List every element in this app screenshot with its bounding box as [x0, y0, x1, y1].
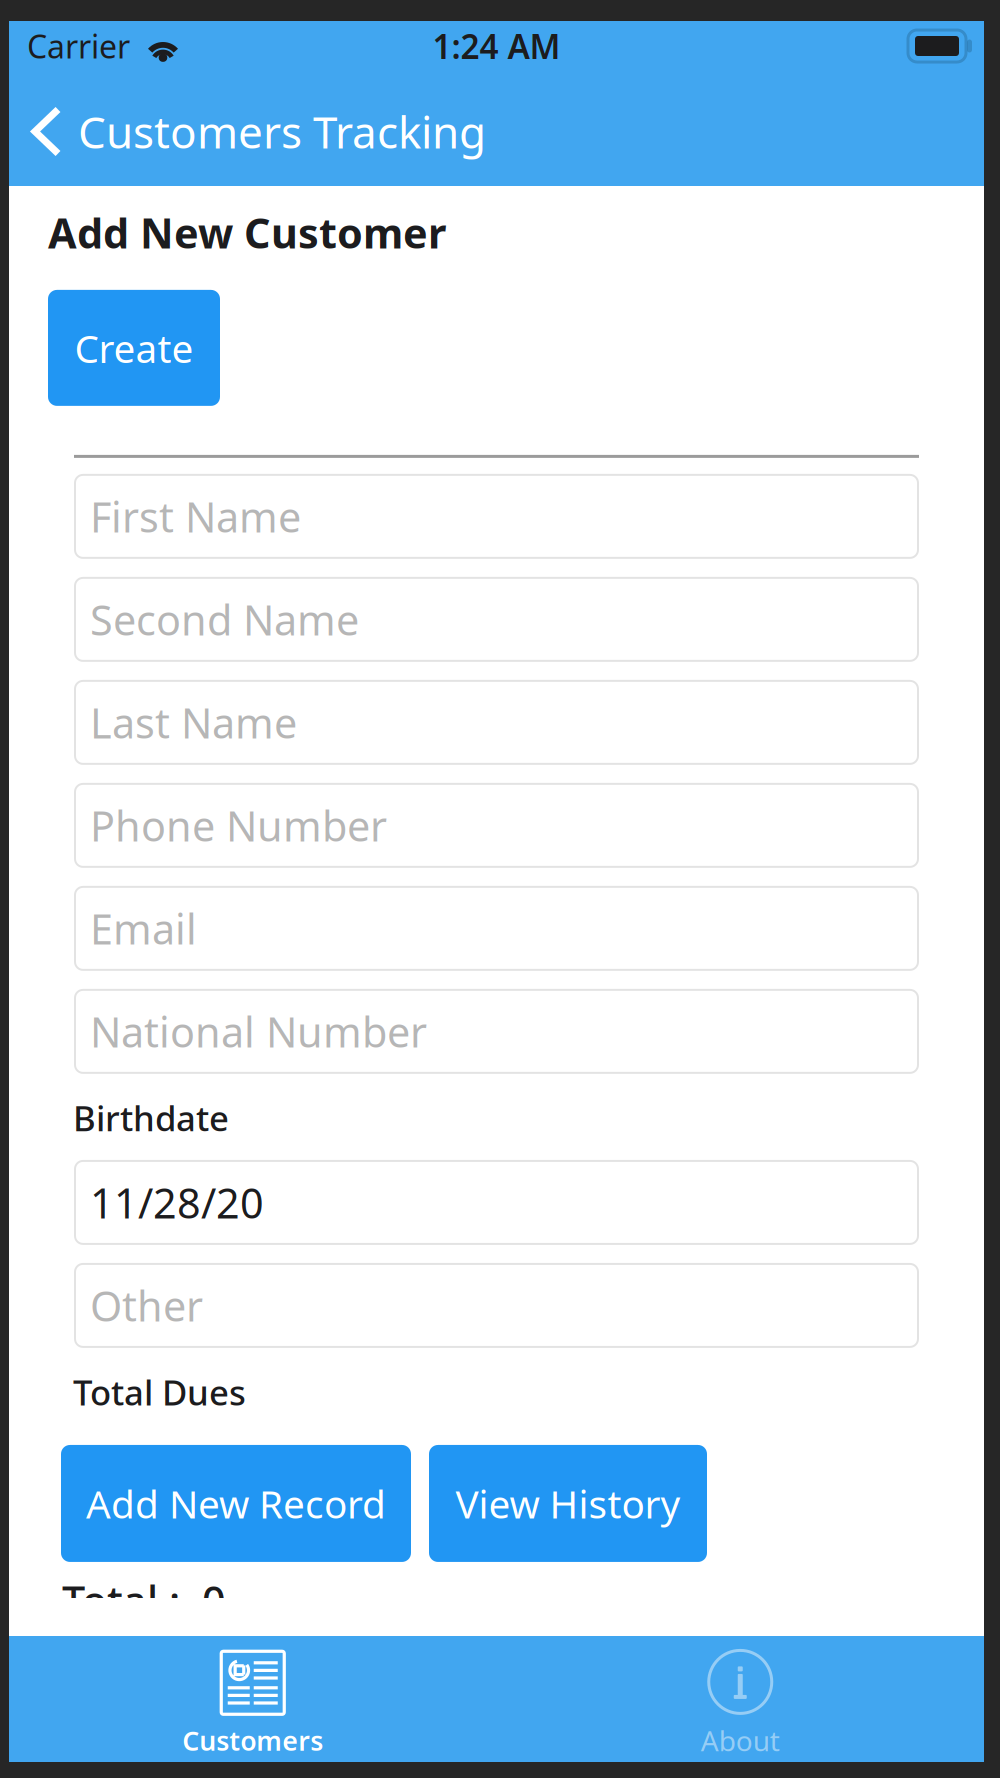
staticText: Carrier	[27, 25, 130, 67]
staticText: Customers	[182, 1723, 323, 1758]
staticText: Total : 0	[62, 1573, 226, 1628]
button[interactable]: View History	[429, 1445, 707, 1562]
staticText: About	[701, 1722, 780, 1759]
staticText: Birthdate	[73, 1095, 229, 1141]
button[interactable]: Create	[48, 290, 220, 406]
staticText: 1:24 AM	[432, 24, 560, 68]
staticText: Phone Number	[90, 798, 387, 853]
staticText: National Number	[90, 1004, 427, 1059]
button[interactable]: About	[496, 1636, 984, 1762]
staticText: Create	[74, 322, 193, 373]
staticText: Email	[90, 901, 197, 956]
staticText: Last Name	[90, 695, 297, 750]
staticText: Customers Tracking	[78, 102, 486, 161]
staticText: Add New Customer	[48, 205, 446, 260]
button[interactable]: Add New Record	[61, 1445, 411, 1562]
button[interactable]: Customers	[9, 1636, 496, 1762]
button[interactable]: Customers Tracking	[9, 77, 502, 186]
staticText: Second Name	[90, 592, 359, 647]
staticText: Total Dues	[73, 1369, 246, 1415]
staticText: View History	[455, 1478, 680, 1529]
staticText: First Name	[90, 489, 301, 544]
staticText: 11/28/20	[90, 1175, 264, 1230]
staticText: Add New Record	[86, 1478, 386, 1529]
staticText: Other	[90, 1278, 203, 1333]
